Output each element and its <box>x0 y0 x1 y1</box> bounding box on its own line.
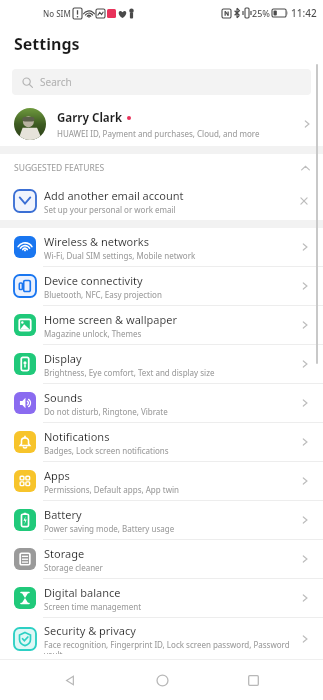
staticText: Screen time management <box>44 601 142 612</box>
button[interactable]: Garry Clark <box>0 102 323 146</box>
staticText: Battery <box>44 507 82 522</box>
button[interactable]: Digital balance <box>0 579 323 617</box>
staticText: 11:42 <box>291 6 317 20</box>
staticText: Apps <box>44 468 70 483</box>
button[interactable]: Storage <box>0 540 323 578</box>
button[interactable]: Recent apps <box>231 660 275 700</box>
other: Collapse <box>300 163 311 174</box>
button[interactable]: Battery <box>0 501 323 539</box>
button[interactable]: Security & privacy <box>0 618 323 659</box>
staticText: No SIM <box>43 8 71 19</box>
button[interactable]: Notifications <box>0 423 323 461</box>
staticText: Sounds <box>44 390 83 405</box>
button[interactable]: Wireless & networks <box>0 228 323 266</box>
button[interactable]: Device connectivity <box>0 267 323 305</box>
button[interactable]: SUGGESTED FEATURES <box>0 154 323 182</box>
staticText: Do not disturb, Ringtone, Vibrate <box>44 406 168 417</box>
button[interactable]: Home screen & wallpaper <box>0 306 323 344</box>
staticText: Device connectivity <box>44 273 143 288</box>
staticText: Wireless & networks <box>44 234 149 249</box>
staticText: HUAWEI ID, Payment and purchases, Cloud,… <box>57 128 260 139</box>
staticText: Notifications <box>44 429 110 444</box>
staticText: Face recognition, Fingerprint ID, Lock s… <box>44 639 299 654</box>
staticText: Security & privacy <box>44 623 136 638</box>
staticText: Permissions, Default apps, App twin <box>44 484 179 495</box>
staticText: Badges, Lock screen notifications <box>44 445 169 456</box>
staticText: Search <box>40 75 72 89</box>
staticText: Storage <box>44 546 85 561</box>
button[interactable]: Dismiss <box>297 194 311 208</box>
staticText: Add another email account <box>44 188 184 203</box>
staticText: Settings <box>14 33 80 55</box>
staticText: Wi-Fi, Dual SIM settings, Mobile network <box>44 250 196 261</box>
staticText: Digital balance <box>44 585 121 600</box>
button[interactable]: Back <box>48 660 92 700</box>
button[interactable]: Display <box>0 345 323 383</box>
staticText: Garry Clark <box>57 110 123 126</box>
staticText: 25% <box>252 7 270 19</box>
button[interactable]: Search <box>12 69 311 95</box>
staticText: Power saving mode, Battery usage <box>44 523 175 534</box>
staticText: Display <box>44 351 82 366</box>
staticText: Brightness, Eye comfort, Text and displa… <box>44 367 215 378</box>
staticText: Magazine unlock, Themes <box>44 328 142 339</box>
staticText: Storage cleaner <box>44 562 103 573</box>
button[interactable]: Sounds <box>0 384 323 422</box>
button[interactable]: Home <box>140 660 184 700</box>
button[interactable]: Add another email account <box>0 182 323 220</box>
staticText: Bluetooth, NFC, Easy projection <box>44 289 162 300</box>
staticText: SUGGESTED FEATURES <box>14 162 300 174</box>
button[interactable]: Apps <box>0 462 323 500</box>
staticText: Set up your personal or work email <box>44 204 176 215</box>
staticText: Home screen & wallpaper <box>44 312 177 327</box>
